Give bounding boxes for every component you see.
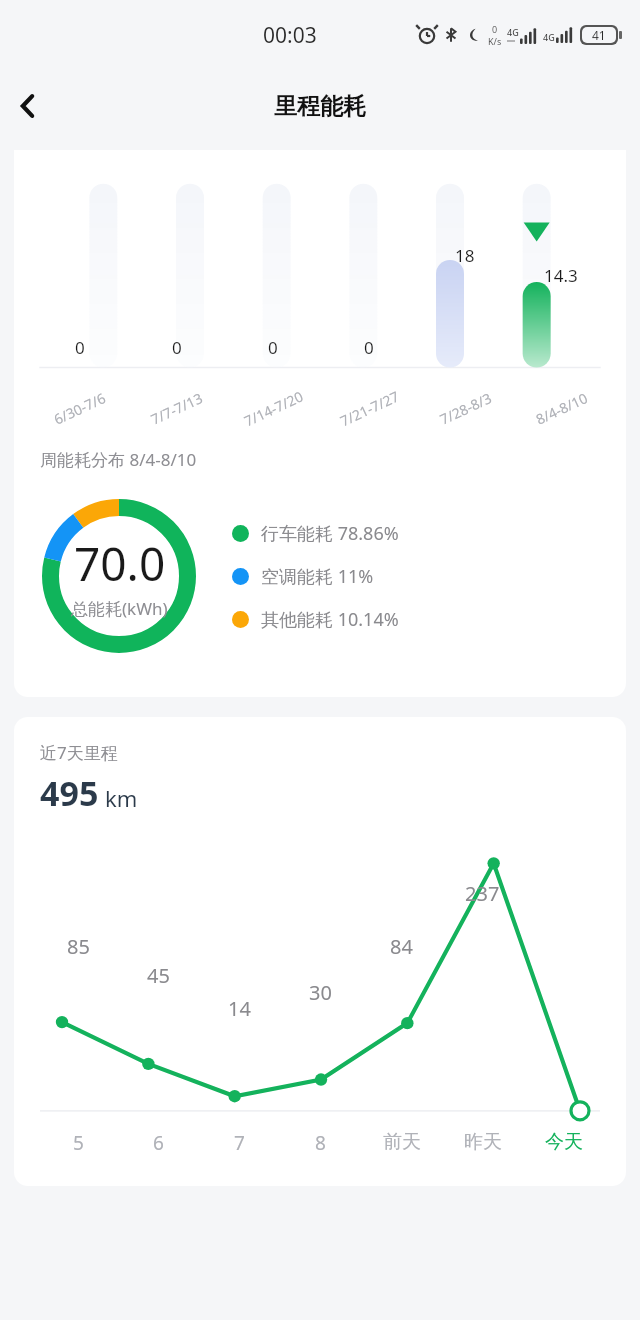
staticText: 18 bbox=[455, 244, 475, 267]
staticText: 14.3 bbox=[544, 264, 578, 287]
staticText: 85 bbox=[67, 933, 90, 960]
staticText: 5 bbox=[73, 1130, 84, 1156]
button[interactable]: 其他能耗 10.14% bbox=[232, 607, 399, 632]
staticText: 今天 bbox=[545, 1130, 583, 1154]
staticText: 7/21-7/27 bbox=[337, 387, 402, 430]
staticText: 总能耗(kWh) bbox=[71, 597, 168, 620]
staticText: 昨天 bbox=[464, 1130, 502, 1154]
staticText: 周能耗分布 8/4-8/10 bbox=[40, 448, 197, 471]
staticText: km bbox=[105, 783, 138, 813]
staticText: 237 bbox=[465, 880, 500, 907]
button[interactable]: 空调能耗 11% bbox=[232, 564, 374, 589]
button[interactable]: 行车能耗 78.86% bbox=[232, 521, 399, 546]
staticText: 4G bbox=[543, 31, 555, 43]
staticText: 4G bbox=[507, 26, 519, 38]
staticText: 30 bbox=[309, 979, 332, 1006]
staticText: K/s bbox=[488, 35, 502, 47]
staticText: 其他能耗 10.14% bbox=[261, 607, 399, 632]
staticText: 6 bbox=[153, 1130, 164, 1156]
staticText: 7/7-7/13 bbox=[148, 388, 205, 429]
staticText: 8/4-8/10 bbox=[533, 388, 590, 429]
staticText: 8 bbox=[315, 1130, 326, 1156]
staticText: 6/30-7/6 bbox=[51, 388, 108, 429]
staticText: 里程能耗 bbox=[274, 92, 366, 121]
staticText: 84 bbox=[390, 933, 413, 960]
staticText: 0 bbox=[492, 23, 498, 35]
staticText: 495 bbox=[40, 770, 99, 816]
button[interactable]: Back bbox=[0, 78, 56, 134]
staticText: 14 bbox=[228, 995, 251, 1022]
staticText: 45 bbox=[147, 962, 170, 989]
staticText: 近7天里程 bbox=[40, 741, 118, 764]
staticText: 7/14-7/20 bbox=[241, 387, 306, 430]
staticText: 0 bbox=[172, 336, 182, 359]
staticText: 前天 bbox=[383, 1130, 421, 1154]
staticText: 7 bbox=[234, 1130, 245, 1156]
staticText: 7/28-8/3 bbox=[437, 388, 494, 429]
staticText: 空调能耗 11% bbox=[261, 564, 374, 589]
staticText: 0 bbox=[268, 336, 278, 359]
staticText: 41 bbox=[592, 27, 606, 43]
staticText: 0 bbox=[364, 336, 374, 359]
staticText: 00:03 bbox=[263, 21, 317, 50]
staticText: 0 bbox=[75, 336, 85, 359]
staticText: 70.0 bbox=[74, 532, 166, 595]
staticText: 行车能耗 78.86% bbox=[261, 521, 399, 546]
